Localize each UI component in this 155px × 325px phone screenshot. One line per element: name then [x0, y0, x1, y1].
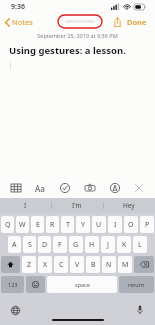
- staticText: Notes: [12, 17, 33, 27]
- button[interactable]: Backspace: [134, 256, 154, 273]
- staticText: D: [42, 240, 48, 250]
- button[interactable]: Camera: [81, 179, 99, 197]
- button[interactable]: space: [47, 276, 117, 293]
- button[interactable]: I'm: [51, 198, 103, 213]
- button[interactable]: Change keyboard: [9, 304, 21, 316]
- staticText: R: [50, 220, 55, 230]
- button[interactable]: P: [140, 216, 154, 233]
- staticText: F: [58, 240, 62, 250]
- button[interactable]: Shift: [1, 256, 20, 273]
- button[interactable]: W: [16, 216, 29, 233]
- button[interactable]: Y: [76, 216, 90, 233]
- button[interactable]: Hey: [103, 198, 155, 213]
- staticText: Hey: [123, 201, 135, 210]
- staticText: Z: [27, 260, 32, 270]
- button[interactable]: J: [101, 236, 115, 253]
- staticText: H: [89, 240, 95, 250]
- button[interactable]: L: [133, 236, 147, 253]
- staticText: Done: [127, 17, 147, 27]
- staticText: Aa: [35, 183, 45, 194]
- staticText: A: [12, 240, 17, 250]
- staticText: E: [36, 220, 40, 230]
- button[interactable]: G: [69, 236, 83, 253]
- button[interactable]: R: [46, 216, 59, 233]
- button[interactable]: Z: [22, 256, 36, 273]
- staticText: O: [128, 220, 134, 230]
- staticText: X: [43, 260, 48, 270]
- staticText: Using gestures: a lesson.: [9, 44, 126, 57]
- button[interactable]: N: [102, 256, 116, 273]
- staticText: U: [96, 220, 102, 230]
- button[interactable]: A: [8, 236, 21, 253]
- staticText: M: [122, 260, 129, 270]
- button[interactable]: C: [54, 256, 68, 273]
- button[interactable]: return: [119, 276, 154, 293]
- staticText: K: [122, 240, 127, 250]
- button[interactable]: Checklist: [56, 179, 74, 197]
- staticText: C: [59, 260, 64, 270]
- staticText: space: [75, 281, 90, 288]
- button[interactable]: H: [85, 236, 99, 253]
- staticText: L: [138, 240, 142, 250]
- button[interactable]: Table: [7, 179, 25, 197]
- staticText: I'm: [72, 201, 82, 210]
- button[interactable]: Markup: [106, 179, 124, 197]
- button[interactable]: Done: [124, 15, 150, 29]
- button[interactable]: Emoji: [26, 276, 45, 293]
- button[interactable]: Q: [1, 216, 14, 233]
- staticText: I: [24, 201, 27, 210]
- button[interactable]: X: [38, 256, 52, 273]
- button[interactable]: V: [70, 256, 84, 273]
- staticText: Y: [81, 220, 85, 230]
- staticText: I: [114, 220, 117, 230]
- staticText: G: [73, 240, 79, 250]
- staticText: 123: [8, 281, 18, 288]
- button[interactable]: 123: [1, 276, 24, 293]
- button[interactable]: Notes: [0, 15, 39, 29]
- button[interactable]: T: [61, 216, 74, 233]
- staticText: V: [75, 260, 80, 270]
- staticText: J: [107, 240, 109, 250]
- button[interactable]: I: [108, 216, 122, 233]
- staticText: 9:36: [11, 2, 25, 12]
- button[interactable]: O: [124, 216, 138, 233]
- button[interactable]: D: [38, 236, 51, 253]
- button[interactable]: I: [0, 198, 51, 213]
- staticText: return: [128, 281, 145, 288]
- button[interactable]: U: [92, 216, 106, 233]
- staticText: N: [106, 260, 112, 270]
- button[interactable]: E: [31, 216, 44, 233]
- staticText: T: [66, 220, 70, 230]
- button[interactable]: M: [118, 256, 132, 273]
- button[interactable]: Text format: [31, 179, 49, 197]
- staticText: Q: [5, 220, 11, 230]
- staticText: S: [28, 240, 32, 250]
- staticText: P: [145, 220, 150, 230]
- staticText: W: [19, 220, 26, 230]
- button[interactable]: F: [53, 236, 67, 253]
- button[interactable]: B: [86, 256, 100, 273]
- button[interactable]: K: [117, 236, 131, 253]
- button[interactable]: Dictate: [134, 304, 146, 316]
- button[interactable]: Close keyboard: [130, 179, 148, 197]
- staticText: September 25, 2019 at 9:36 PM: [0, 32, 155, 39]
- button[interactable]: Share: [111, 15, 124, 29]
- button[interactable]: S: [23, 236, 36, 253]
- staticText: B: [91, 260, 96, 270]
